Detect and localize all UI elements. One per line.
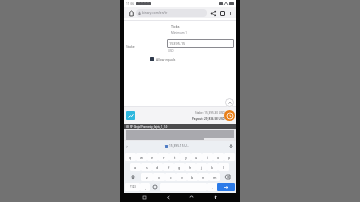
staticText: t [174,155,176,160]
button[interactable]: Emoji [150,182,160,192]
button[interactable]: g [174,163,185,171]
button[interactable]: w [136,153,147,161]
button[interactable]: Home [188,194,195,201]
staticText: Minimum 1 [171,31,188,35]
staticText: binary.com/en/tr [142,11,205,15]
staticText: u [195,155,198,160]
button[interactable]: a [130,163,141,171]
staticText: g [178,165,181,170]
staticText: h [189,165,192,170]
button[interactable]: Tabs [218,9,226,17]
button[interactable]: f [163,163,174,171]
button[interactable]: Allow equals [150,57,236,61]
button[interactable]: binary.com/en/tr [136,9,207,17]
button[interactable]: y [180,153,191,161]
button[interactable]: More options [227,10,233,16]
staticText: i [207,155,208,160]
button[interactable]: z [141,173,153,181]
staticText: l [223,165,224,170]
staticText: d [156,165,159,170]
button[interactable]: , [140,183,150,191]
staticText: a [134,165,137,170]
staticText: o [217,155,220,160]
button[interactable]: m [209,173,220,181]
staticText: 11:56 [126,2,135,6]
staticText: 15395.15 [169,41,186,46]
button[interactable]: d [152,163,163,171]
staticText: b [191,175,194,180]
staticText: e [151,155,154,160]
button[interactable]: 15,395.15 U… [164,144,191,148]
button[interactable]: e [147,153,158,161]
button[interactable] [126,111,135,120]
staticText: ?123 [130,185,136,189]
button[interactable]: o [213,153,224,161]
button[interactable]: RF Ginjal Pramesty_fajris_1_1.0 [124,124,236,141]
button[interactable]: q [125,153,136,161]
staticText: w [140,155,143,160]
button[interactable]: r [158,153,169,161]
button[interactable]: c [165,173,176,181]
button[interactable]: Enter [217,183,235,191]
button[interactable]: > [126,144,128,149]
staticText: Stake [126,44,167,49]
staticText: f [168,165,170,170]
button[interactable]: 15395.15 [167,39,234,48]
staticText: Ticks [171,24,180,29]
button[interactable]: h [185,163,196,171]
button[interactable]: Collapse [225,98,234,107]
button[interactable]: Back [165,194,172,201]
staticText: v [181,175,183,180]
button[interactable]: Voice input [228,143,234,149]
button[interactable]: x [153,173,165,181]
staticText: m [213,175,217,180]
button[interactable]: Share [209,9,217,17]
staticText: x [158,175,160,180]
button[interactable]: Home [127,9,135,17]
button[interactable]: i [202,153,213,161]
button[interactable]: . [207,183,217,191]
staticText: y [185,155,187,160]
button[interactable]: s [141,163,152,171]
staticText: 15,395.15 U… [169,144,190,148]
button[interactable]: n [198,173,209,181]
staticText: USD [168,49,174,53]
button[interactable]: Hide keyboard [141,194,148,201]
staticText: n [202,175,205,180]
button[interactable]: Backspace [220,172,235,182]
button[interactable]: ?123 [125,183,140,191]
staticText: r [163,155,165,160]
button[interactable]: p [224,153,235,161]
button[interactable]: Recent apps [212,194,219,201]
staticText: j [201,165,202,170]
staticText: q [129,155,132,160]
staticText: . [212,185,213,190]
staticText: s [146,165,148,170]
staticText: Allow equals [156,57,176,61]
button[interactable]: t [169,153,180,161]
button[interactable]: u [191,153,202,161]
staticText: Payout: 29,836.58 USD [192,117,225,121]
button[interactable]: v [176,173,187,181]
staticText: , [145,185,146,190]
button[interactable]: b [187,173,198,181]
staticText: k [211,165,214,170]
button[interactable]: j [196,163,207,171]
staticText: p [228,155,231,160]
button[interactable]: k [207,163,218,171]
button[interactable]: l [218,163,229,171]
button[interactable]: Purchase [224,110,235,121]
button[interactable]: Shift [125,172,141,182]
staticText: Stake: 15,395.30 USD [195,111,225,115]
staticText: RF Ginjal Pramesty_fajris_1_1.0 [130,125,168,129]
staticText: z [146,175,148,180]
staticText: c [170,175,172,180]
